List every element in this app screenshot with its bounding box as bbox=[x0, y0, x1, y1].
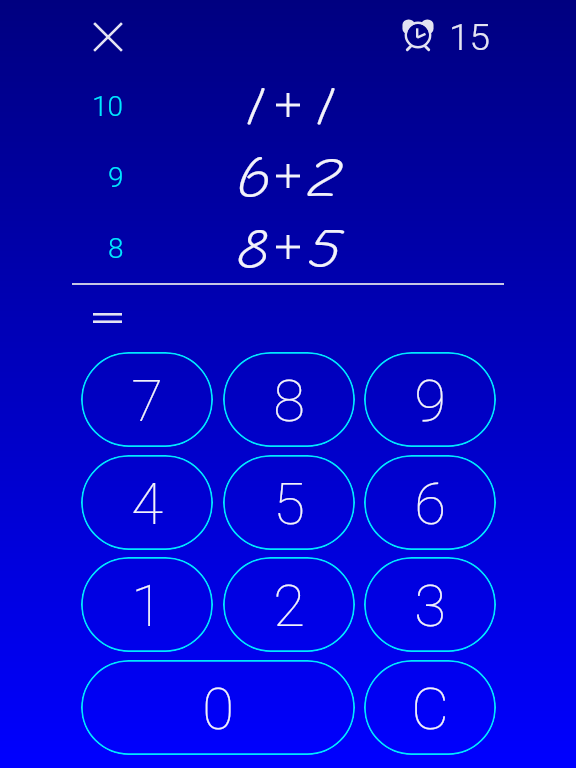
button[interactable]: 4 bbox=[81, 455, 213, 550]
staticText: 6 bbox=[414, 470, 446, 538]
staticText: 8 bbox=[108, 232, 124, 265]
staticText: 5 bbox=[307, 213, 340, 284]
staticText: 4 bbox=[131, 470, 163, 538]
button[interactable]: Timer bbox=[402, 12, 491, 56]
staticText: 9 bbox=[414, 367, 446, 435]
staticText: C bbox=[411, 675, 449, 743]
button[interactable]: C bbox=[364, 660, 496, 755]
button[interactable]: 2 bbox=[223, 557, 355, 652]
button[interactable]: 7 bbox=[81, 352, 213, 447]
button[interactable]: 6 bbox=[364, 455, 496, 550]
staticText: 8 bbox=[237, 213, 269, 284]
staticText: 15 bbox=[449, 16, 491, 59]
button[interactable]: 8 bbox=[223, 352, 355, 447]
staticText: 5 bbox=[273, 470, 305, 538]
staticText: 1 bbox=[131, 572, 163, 640]
staticText: 9 bbox=[108, 161, 124, 194]
staticText: 1 bbox=[245, 71, 262, 142]
button[interactable]: 0 bbox=[81, 660, 355, 755]
staticText: 2 bbox=[273, 572, 305, 640]
staticText: 0 bbox=[202, 675, 234, 743]
button[interactable]: 5 bbox=[223, 455, 355, 550]
staticText: 2 bbox=[307, 142, 340, 213]
button[interactable]: Close bbox=[84, 13, 132, 61]
button[interactable]: 1 bbox=[81, 557, 213, 652]
staticText: 6 bbox=[236, 142, 270, 213]
staticText: 1 bbox=[315, 71, 332, 142]
staticText: 10 bbox=[92, 90, 124, 123]
staticText: 8 bbox=[273, 367, 305, 435]
button[interactable]: 3 bbox=[364, 557, 496, 652]
button[interactable]: 9 bbox=[364, 352, 496, 447]
staticText: 7 bbox=[131, 367, 163, 435]
staticText: 3 bbox=[414, 572, 446, 640]
